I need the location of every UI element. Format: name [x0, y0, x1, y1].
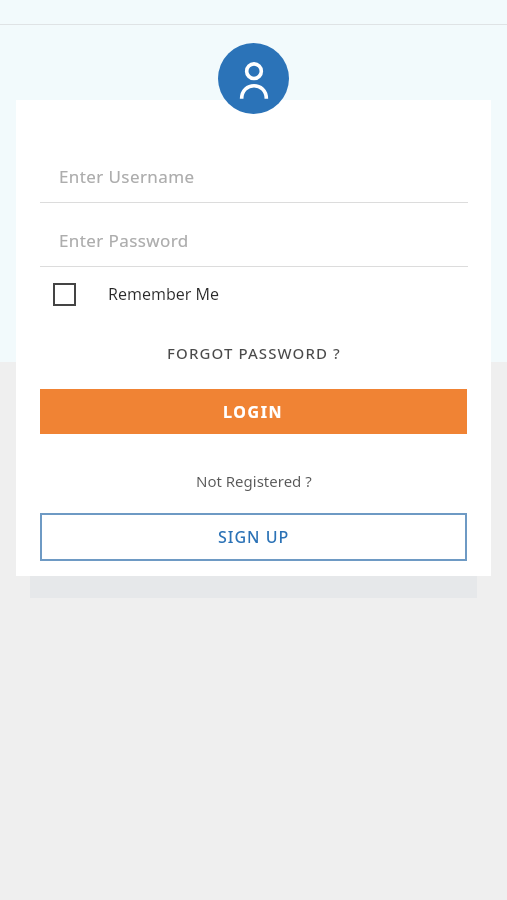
staticText: SIGN UP — [218, 526, 290, 548]
button[interactable]: LOGIN — [40, 389, 467, 434]
staticText: Not Registered ? — [196, 471, 312, 491]
staticText: FORGOT PASSWORD ? — [167, 343, 341, 363]
button[interactable]: SIGN UP — [40, 513, 467, 561]
other: Profile avatar — [218, 43, 289, 114]
staticText: Enter Password — [59, 229, 189, 252]
staticText: LOGIN — [223, 401, 284, 423]
button[interactable]: Remember Me — [40, 275, 300, 313]
staticText: Remember Me — [108, 283, 220, 305]
button[interactable]: Enter Username — [40, 155, 468, 203]
button[interactable]: FORGOT PASSWORD ? — [0, 336, 507, 370]
staticText: Enter Username — [59, 165, 195, 188]
button[interactable]: Enter Password — [40, 219, 468, 267]
